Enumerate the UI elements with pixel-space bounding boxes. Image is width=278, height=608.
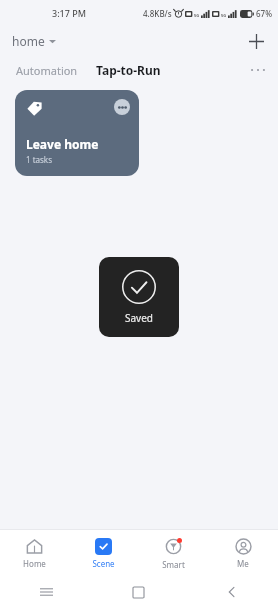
button[interactable]: Scene options — [114, 99, 130, 115]
button[interactable]: Smart — [138, 530, 208, 576]
staticText: 1 tasks — [26, 154, 52, 165]
button[interactable]: Me — [208, 530, 278, 576]
button[interactable]: Home — [0, 530, 69, 576]
staticText: 5G — [221, 13, 227, 18]
staticText: Leave home — [26, 136, 99, 152]
staticText: 67% — [256, 8, 272, 19]
staticText: Home — [23, 558, 46, 569]
staticText: Me — [237, 558, 249, 569]
staticText: 4.8KB/s — [143, 8, 172, 19]
staticText: Automation — [16, 63, 78, 78]
button[interactable]: Tap-to-Run — [94, 58, 163, 82]
button[interactable]: More options — [244, 56, 272, 84]
staticText: Tap-to-Run — [96, 62, 161, 78]
button[interactable]: Home — [92, 576, 185, 608]
button[interactable]: Back — [185, 576, 278, 608]
button[interactable]: home — [10, 30, 58, 52]
staticText: 5G — [194, 13, 200, 18]
staticText: Scene — [92, 558, 115, 569]
button[interactable]: Automation — [14, 59, 80, 82]
button[interactable]: Scene options — [15, 90, 139, 176]
staticText: Smart — [162, 559, 185, 570]
button[interactable]: Scene — [69, 530, 138, 576]
staticText: Saved — [125, 311, 153, 325]
staticText: 3:17 PM — [52, 7, 86, 19]
button[interactable]: Recents — [0, 576, 92, 608]
button[interactable]: Add — [240, 26, 272, 56]
staticText: home — [12, 33, 45, 49]
